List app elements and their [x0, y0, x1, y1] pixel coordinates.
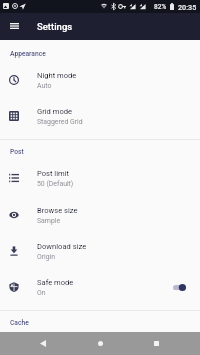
staticText: Cache	[10, 319, 29, 327]
staticText: Night mode	[37, 71, 77, 80]
staticText: Grid mode	[37, 107, 73, 116]
button[interactable]: Grid mode	[0, 98, 200, 134]
staticText: 50 (Default)	[37, 180, 74, 188]
staticText: 20:35	[178, 3, 197, 11]
staticText: Post limit	[37, 169, 70, 178]
button[interactable]: Navigation menu	[4, 16, 24, 36]
button[interactable]: Home	[85, 332, 115, 355]
staticText: Auto	[37, 82, 52, 90]
button[interactable]: Post limit	[0, 160, 200, 196]
button[interactable]: Browse size	[0, 197, 200, 233]
button[interactable]: Back	[28, 332, 58, 355]
staticText: Post	[10, 148, 24, 156]
button[interactable]: Recent apps	[141, 332, 171, 355]
staticText: Sample	[37, 217, 61, 225]
staticText: Safe mode	[37, 278, 74, 287]
staticText: 82%	[154, 3, 167, 11]
staticText: Origin	[37, 253, 56, 261]
staticText: Staggered Grid	[37, 118, 83, 126]
staticText: Download size	[37, 242, 87, 251]
button[interactable]: Download size	[0, 233, 200, 269]
button[interactable]: Safe mode	[0, 269, 200, 305]
staticText: Settings	[37, 21, 73, 32]
staticText: On	[37, 289, 46, 297]
button[interactable]: Safe mode toggle	[173, 281, 187, 294]
staticText: Appearance	[10, 50, 46, 58]
staticText: Browse size	[37, 206, 78, 215]
button[interactable]: Night mode	[0, 62, 200, 98]
